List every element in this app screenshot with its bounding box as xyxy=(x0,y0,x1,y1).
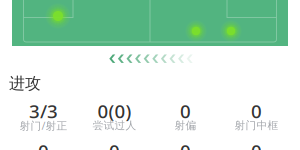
staticText: 0 xyxy=(38,139,49,150)
staticText: 0 xyxy=(180,139,191,150)
staticText: 0 xyxy=(109,139,120,150)
staticText: 尝试过人 xyxy=(92,119,136,132)
staticText: 射门/射正 xyxy=(19,118,67,133)
staticText: 进攻 xyxy=(9,74,41,93)
staticText: 射门中框 xyxy=(234,119,278,132)
staticText: 射偏 xyxy=(174,119,196,132)
staticText: 0 xyxy=(180,99,191,123)
staticText: 0(0) xyxy=(97,99,131,123)
staticText: 3/3 xyxy=(29,99,58,123)
staticText: 0 xyxy=(251,99,262,123)
staticText: 0 xyxy=(251,139,262,150)
